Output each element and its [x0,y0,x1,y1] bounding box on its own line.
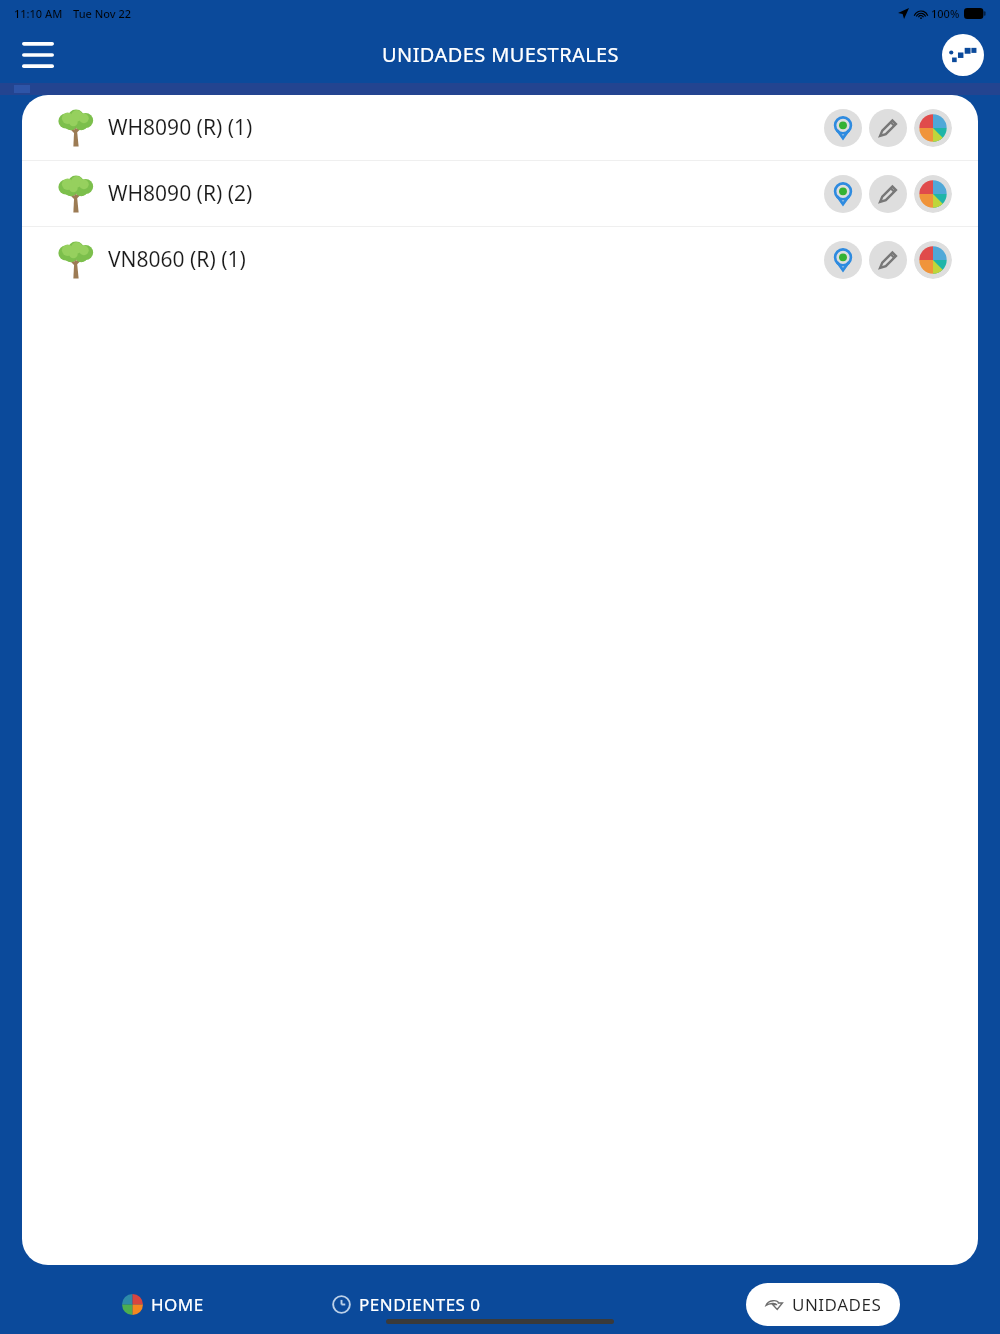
button[interactable]: Chart [914,175,952,213]
staticText: UNIDADES MUESTRALES [382,41,619,68]
button[interactable]: Chart [914,109,952,147]
button[interactable]: App logo [940,32,986,78]
button[interactable]: VN8060 (R) (1) [22,227,978,292]
button[interactable]: UNIDADES [746,1283,900,1326]
staticText: VN8060 (R) (1) [108,245,246,274]
button[interactable]: HOME [118,1289,208,1320]
button[interactable]: WH8090 (R) (1) [22,95,978,160]
staticText: PENDIENTES 0 [359,1293,481,1316]
button[interactable]: Edit [869,109,907,147]
staticText: Tue Nov 22 [73,6,131,21]
button[interactable]: PENDIENTES 0 [328,1289,485,1320]
staticText: UNIDADES [792,1293,882,1316]
staticText: HOME [151,1293,204,1316]
button[interactable]: WH8090 (R) (2) [22,161,978,226]
button[interactable]: Edit [869,175,907,213]
button[interactable]: Menu [14,31,62,79]
button[interactable]: Location [824,241,862,279]
button[interactable]: Location [824,175,862,213]
staticText: WH8090 (R) (1) [108,113,253,142]
button[interactable]: Edit [869,241,907,279]
staticText: 11:10 AM [14,6,63,21]
staticText: 100% [931,6,960,21]
staticText: WH8090 (R) (2) [108,179,253,208]
button[interactable]: Chart [914,241,952,279]
button[interactable]: Location [824,109,862,147]
